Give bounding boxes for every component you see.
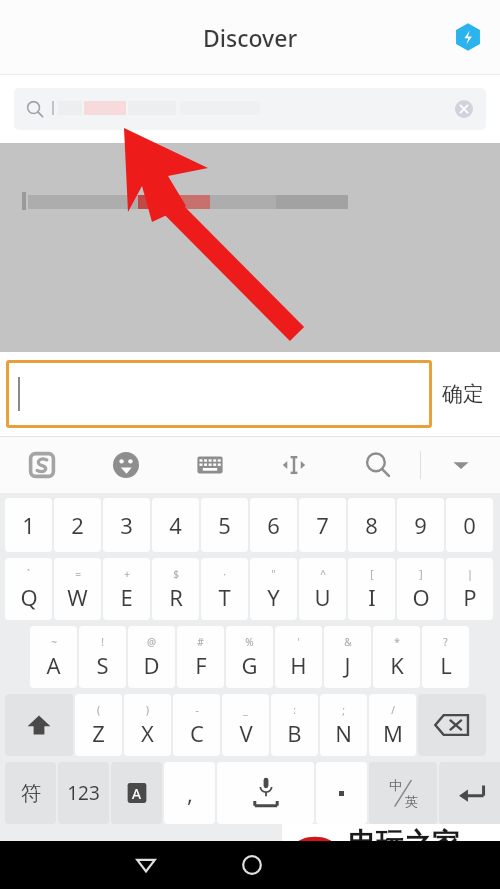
button[interactable] bbox=[439, 762, 500, 824]
staticText: 7 bbox=[316, 510, 329, 540]
staticText: Q bbox=[20, 582, 38, 612]
staticText: [ bbox=[370, 567, 374, 581]
staticText: A bbox=[132, 784, 141, 803]
staticText: F bbox=[195, 650, 207, 680]
button[interactable] bbox=[316, 762, 367, 824]
staticText: 英 bbox=[405, 793, 418, 809]
staticText: · bbox=[223, 567, 226, 581]
button[interactable]: Search bbox=[336, 437, 420, 493]
staticText: O bbox=[412, 582, 430, 612]
button[interactable]: 1 bbox=[5, 498, 52, 552]
button[interactable]: Keyboard layout bbox=[168, 437, 252, 493]
button[interactable]: 5 bbox=[201, 498, 248, 552]
button[interactable]: 中 bbox=[369, 762, 437, 824]
button[interactable]: ( bbox=[75, 694, 122, 756]
button[interactable]: Move cursor bbox=[252, 437, 336, 493]
staticText: 0 bbox=[463, 510, 476, 540]
button[interactable]: 3 bbox=[103, 498, 150, 552]
button[interactable]: ! bbox=[79, 626, 126, 688]
staticText: @ bbox=[147, 635, 156, 649]
button[interactable]: ` bbox=[5, 558, 52, 620]
button[interactable]: / bbox=[369, 694, 416, 756]
button[interactable]: 6 bbox=[250, 498, 297, 552]
staticText: N bbox=[335, 718, 352, 748]
staticText: : bbox=[293, 703, 296, 717]
button[interactable]: Input method bbox=[0, 437, 84, 493]
button[interactable] bbox=[6, 360, 432, 428]
staticText: ` bbox=[27, 567, 30, 581]
button[interactable]: @ bbox=[128, 626, 175, 688]
button[interactable]: 4 bbox=[152, 498, 199, 552]
staticText: ' bbox=[297, 635, 300, 649]
staticText: C bbox=[190, 718, 204, 748]
button[interactable]: | bbox=[446, 558, 493, 620]
button[interactable]: : bbox=[271, 694, 318, 756]
staticText: 6 bbox=[267, 510, 280, 540]
button[interactable]: Boost bbox=[450, 19, 486, 55]
button[interactable]: A bbox=[111, 762, 162, 824]
button[interactable]: [ bbox=[348, 558, 395, 620]
button[interactable]: ) bbox=[124, 694, 171, 756]
button[interactable]: 9 bbox=[397, 498, 444, 552]
staticText: ~ bbox=[51, 635, 57, 649]
button[interactable]: ~ bbox=[30, 626, 77, 688]
button[interactable]: # bbox=[177, 626, 224, 688]
staticText: + bbox=[124, 567, 130, 581]
staticText: ] bbox=[419, 567, 423, 581]
staticText: ( bbox=[97, 703, 100, 717]
button[interactable]: * bbox=[373, 626, 420, 688]
button[interactable]: ^ bbox=[299, 558, 346, 620]
button[interactable]: + bbox=[103, 558, 150, 620]
staticText: L bbox=[440, 650, 452, 680]
button[interactable]: Clear bbox=[448, 93, 480, 125]
button[interactable]: 0 bbox=[446, 498, 493, 552]
staticText: * bbox=[394, 635, 400, 649]
staticText: 123 bbox=[67, 780, 100, 806]
staticText: P bbox=[463, 582, 477, 612]
button[interactable]: $ bbox=[152, 558, 199, 620]
button[interactable]: & bbox=[324, 626, 371, 688]
button[interactable]: Clear bbox=[14, 88, 486, 130]
button[interactable]: 2 bbox=[54, 498, 101, 552]
button[interactable]: 123 bbox=[58, 762, 109, 824]
button[interactable]: % bbox=[226, 626, 273, 688]
staticText: 5 bbox=[218, 510, 231, 540]
button[interactable]: ; bbox=[320, 694, 367, 756]
staticText: = bbox=[75, 567, 81, 581]
staticText: V bbox=[239, 718, 253, 748]
staticText: $ bbox=[173, 567, 179, 581]
button[interactable]: ] bbox=[397, 558, 444, 620]
button[interactable]: _ bbox=[222, 694, 269, 756]
staticText: ; bbox=[342, 703, 345, 717]
button[interactable] bbox=[418, 694, 486, 756]
staticText: J bbox=[344, 650, 351, 680]
staticText: 2 bbox=[71, 510, 84, 540]
button[interactable] bbox=[217, 762, 314, 824]
button[interactable] bbox=[5, 694, 73, 756]
staticText: D bbox=[143, 650, 160, 680]
button[interactable]: 8 bbox=[348, 498, 395, 552]
button[interactable]: 确定 bbox=[432, 360, 494, 428]
button[interactable]: " bbox=[250, 558, 297, 620]
staticText: E bbox=[120, 582, 133, 612]
button[interactable]: · bbox=[201, 558, 248, 620]
staticText: ! bbox=[101, 635, 104, 649]
button[interactable]: - bbox=[173, 694, 220, 756]
button[interactable]: Emoji bbox=[84, 437, 168, 493]
staticText: Z bbox=[92, 718, 105, 748]
button[interactable]: 7 bbox=[299, 498, 346, 552]
staticText: X bbox=[141, 718, 154, 748]
button[interactable]: Home bbox=[222, 841, 282, 889]
button[interactable]: Back bbox=[116, 841, 176, 889]
button[interactable]: Hide keyboard bbox=[421, 437, 500, 493]
staticText: B bbox=[287, 718, 302, 748]
button[interactable]: 符 bbox=[5, 762, 56, 824]
button[interactable]: ? bbox=[422, 626, 469, 688]
staticText: 符 bbox=[21, 781, 41, 806]
button[interactable]: ' bbox=[275, 626, 322, 688]
staticText: 中 bbox=[389, 777, 402, 793]
button[interactable]: , bbox=[164, 762, 215, 824]
button[interactable]: = bbox=[54, 558, 101, 620]
staticText: 电玩之家 bbox=[348, 826, 460, 861]
staticText: % bbox=[245, 635, 254, 649]
